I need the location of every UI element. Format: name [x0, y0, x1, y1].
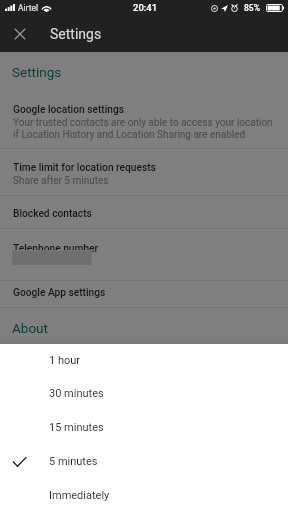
staticText: Settings: [12, 64, 62, 80]
staticText: Google App settings: [13, 287, 106, 299]
button[interactable]: 5 minutes: [0, 444, 288, 478]
staticText: Your trusted contacts are only able to a…: [13, 117, 273, 140]
button[interactable]: 30 minutes: [0, 377, 288, 410]
staticText: Settings: [50, 26, 102, 42]
staticText: Time limit for location requests: [13, 162, 156, 174]
staticText: 30 minutes: [49, 387, 104, 400]
staticText: 5 minutes: [49, 455, 98, 468]
staticText: Airtel: [18, 3, 39, 13]
staticText: 15 minutes: [49, 421, 104, 434]
button[interactable]: Close: [2, 16, 38, 52]
staticText: Telephone number: [13, 243, 99, 255]
staticText: Google location settings: [13, 104, 125, 116]
staticText: Blocked contacts: [13, 208, 92, 220]
staticText: About: [12, 320, 48, 336]
button[interactable]: Immediately: [0, 478, 288, 512]
staticText: 20:41: [133, 2, 158, 13]
staticText: 85%: [244, 3, 260, 13]
button[interactable]: 1 hour: [0, 344, 288, 377]
staticText: Immediately: [49, 489, 110, 502]
staticText: Share after 5 minutes: [13, 175, 109, 187]
staticText: 1 hour: [49, 354, 81, 367]
button[interactable]: 15 minutes: [0, 410, 288, 444]
